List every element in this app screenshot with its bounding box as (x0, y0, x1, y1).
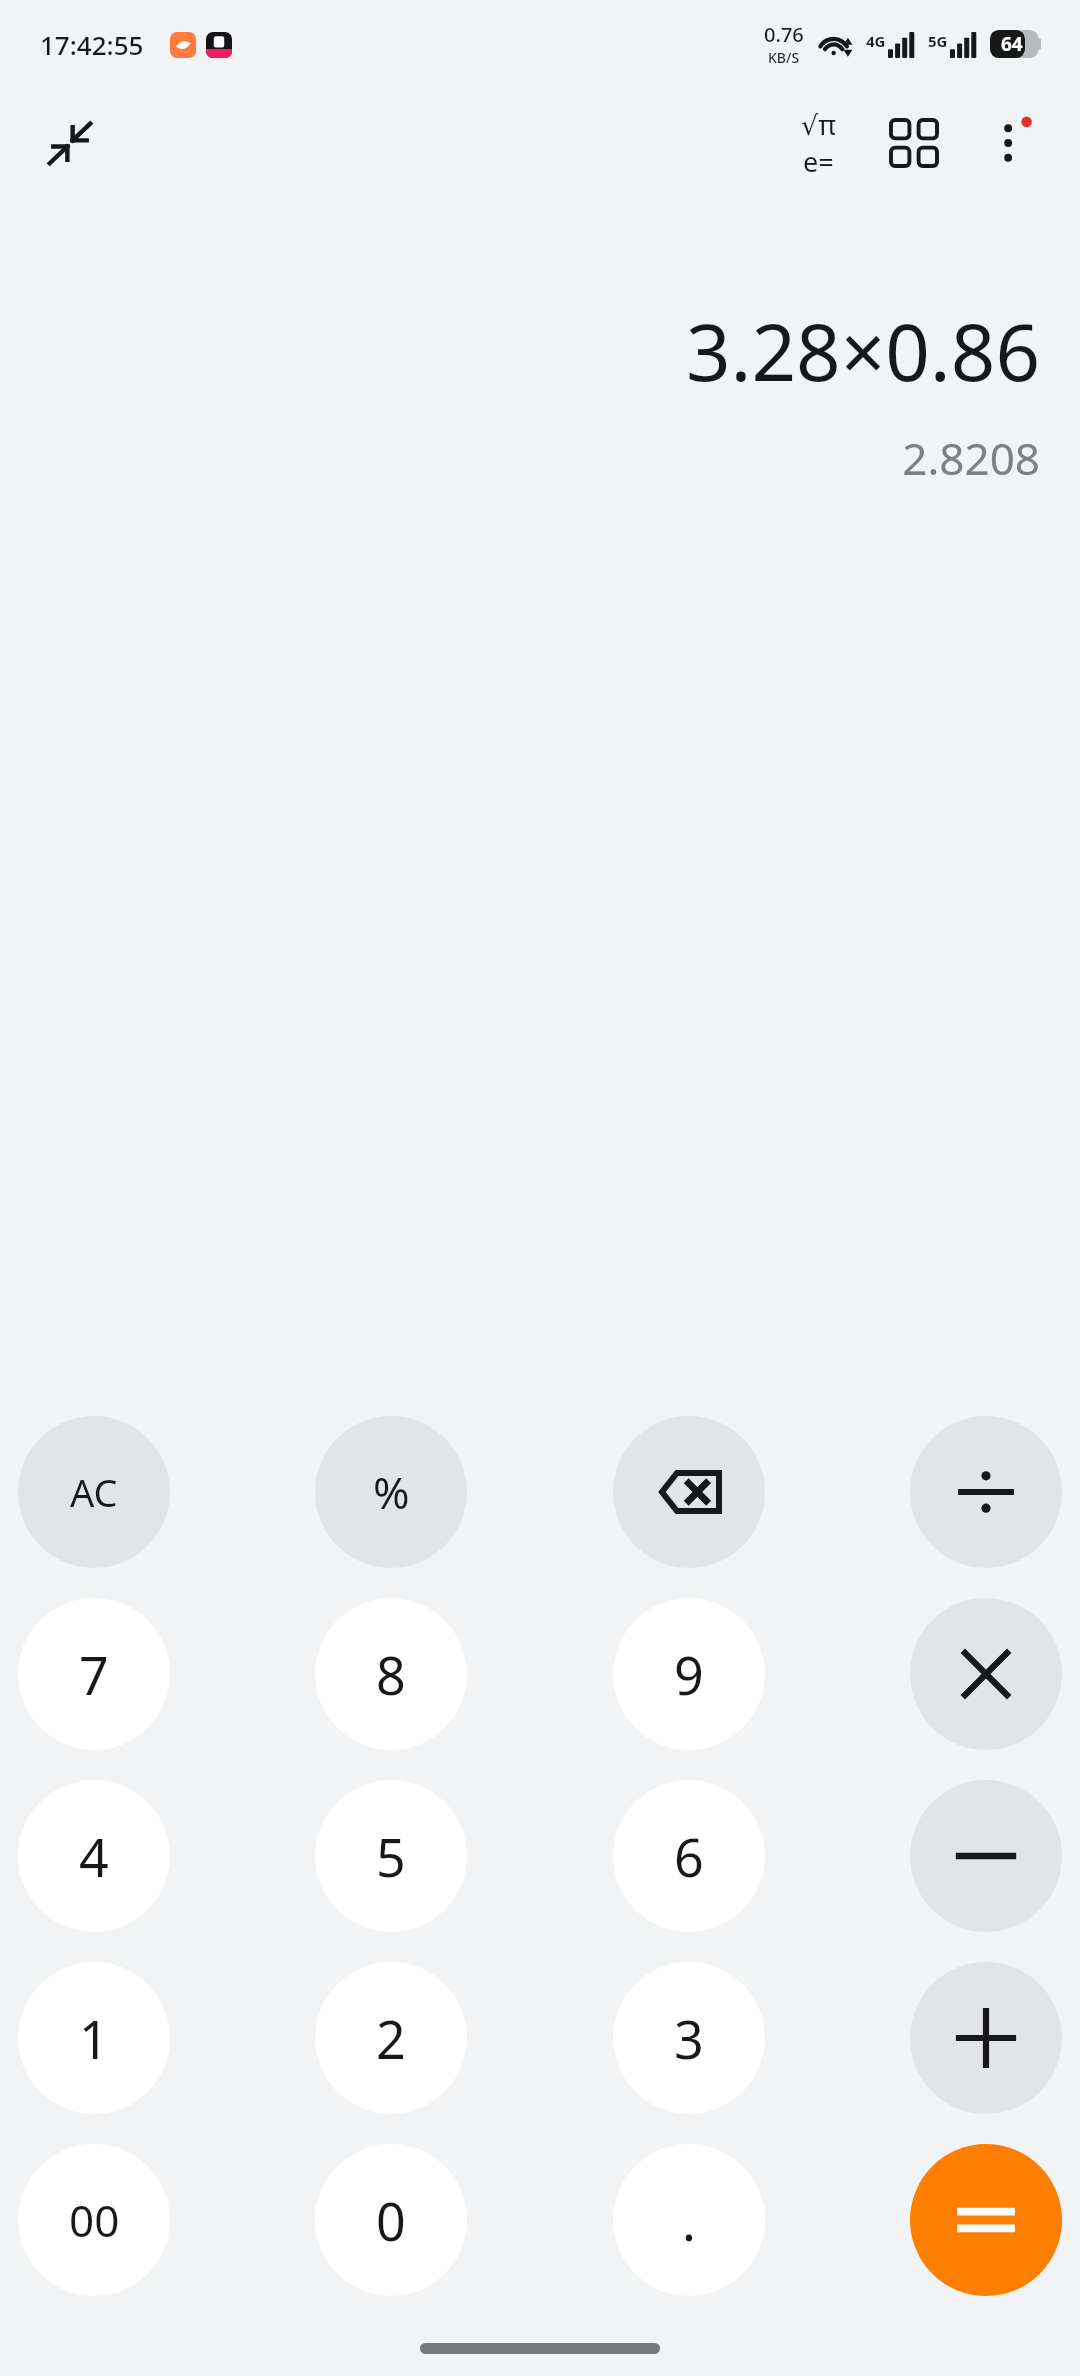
button[interactable]: 9 (613, 1598, 765, 1750)
staticText: 1 (79, 2003, 109, 2074)
button[interactable]: Equals (910, 2144, 1062, 2296)
button[interactable]: 1 (18, 1962, 170, 2114)
staticText: 8 (376, 1639, 406, 1710)
button[interactable]: % (315, 1416, 467, 1568)
staticText: AC (70, 1466, 118, 1518)
staticText: 64 (1001, 31, 1023, 57)
staticText: . (682, 2185, 696, 2256)
button[interactable]: Scientific (770, 95, 866, 191)
button[interactable]: 2 (315, 1962, 467, 2114)
button[interactable]: More options (962, 95, 1058, 191)
staticText: √π (801, 106, 836, 143)
staticText: 5G (928, 31, 948, 51)
button[interactable]: 5 (315, 1780, 467, 1932)
button[interactable]: Plus (910, 1962, 1062, 2114)
staticText: 00 (69, 2190, 120, 2250)
staticText: 3 (674, 2003, 704, 2074)
staticText: KB/S (768, 48, 800, 67)
staticText: % (373, 1462, 410, 1522)
button[interactable]: Unit converter (866, 95, 962, 191)
button[interactable]: Minus (910, 1780, 1062, 1932)
button[interactable]: 8 (315, 1598, 467, 1750)
button[interactable]: AC (18, 1416, 170, 1568)
button[interactable]: 6 (613, 1780, 765, 1932)
button[interactable]: 3 (613, 1962, 765, 2114)
staticText: 9 (674, 1639, 704, 1710)
staticText: 6 (674, 1821, 704, 1892)
button[interactable]: 00 (18, 2144, 170, 2296)
staticText: 0.76 (764, 21, 804, 48)
button[interactable]: Multiply (910, 1598, 1062, 1750)
staticText: e= (803, 143, 834, 180)
staticText: 2 (376, 2003, 406, 2074)
staticText: 4 (79, 1821, 109, 1892)
button[interactable]: Divide (910, 1416, 1062, 1568)
button[interactable]: Backspace (613, 1416, 765, 1568)
button[interactable]: . (613, 2144, 765, 2296)
staticText: 5 (376, 1821, 406, 1892)
staticText: 4G (866, 31, 886, 51)
staticText: 0 (376, 2185, 406, 2256)
button[interactable]: 4 (18, 1780, 170, 1932)
staticText: 7 (79, 1639, 109, 1710)
staticText: 17:42:55 (40, 27, 144, 62)
button[interactable]: 7 (18, 1598, 170, 1750)
button[interactable]: 0 (315, 2144, 467, 2296)
staticText: 3.28×0.86 (685, 298, 1040, 404)
staticText: 2.8208 (902, 428, 1040, 488)
button[interactable]: Collapse (34, 107, 106, 179)
